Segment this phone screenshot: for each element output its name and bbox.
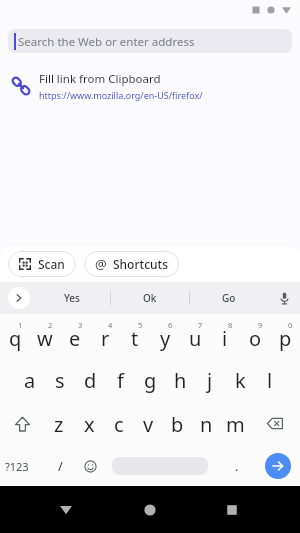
button[interactable]: s	[45, 358, 75, 402]
staticText: g	[144, 367, 157, 394]
button[interactable]: v	[134, 402, 163, 446]
staticText: l	[267, 367, 273, 394]
staticText: q	[9, 325, 22, 352]
staticText: ?123	[5, 459, 29, 474]
staticText: j	[207, 367, 213, 394]
button[interactable]: q	[0, 314, 30, 358]
staticText: e	[69, 325, 81, 352]
button[interactable]: y	[150, 314, 180, 358]
button[interactable]	[225, 503, 239, 517]
staticText: Ok	[143, 291, 157, 305]
staticText: Search the Web or enter address	[18, 34, 195, 50]
staticText: Scan	[38, 256, 65, 272]
staticText: c	[114, 411, 124, 438]
staticText: 3	[78, 320, 83, 330]
button[interactable]: m	[221, 402, 250, 446]
staticText: o	[249, 325, 262, 352]
staticText: k	[235, 367, 246, 394]
button[interactable]	[268, 282, 300, 314]
button[interactable]: Fill link from Clipboard	[13, 69, 300, 103]
button[interactable]: ?123	[5, 446, 45, 486]
staticText: https://www.mozilla.org/en-US/firefox/	[39, 89, 203, 101]
staticText: Shortcuts	[113, 256, 168, 272]
button[interactable]: x	[74, 402, 104, 446]
button[interactable]: i	[210, 314, 240, 358]
staticText: Go	[222, 291, 236, 305]
button[interactable]: Go	[190, 282, 268, 314]
staticText: Yes	[64, 291, 80, 305]
button[interactable]: o	[240, 314, 270, 358]
staticText: i	[222, 325, 228, 352]
staticText: z	[54, 411, 64, 438]
staticText: s	[55, 367, 65, 394]
staticText: .	[235, 457, 239, 475]
button[interactable]: f	[105, 358, 135, 402]
staticText: d	[84, 367, 97, 394]
staticText: 7	[198, 320, 203, 330]
button[interactable]: k	[225, 358, 255, 402]
button[interactable]: d	[75, 358, 105, 402]
button[interactable]: c	[104, 402, 134, 446]
button[interactable]: n	[192, 402, 221, 446]
button[interactable]: u	[180, 314, 210, 358]
staticText: y	[160, 325, 171, 352]
button[interactable]	[250, 402, 300, 446]
button[interactable]: @	[84, 251, 179, 277]
button[interactable]: Search the Web or enter address	[8, 29, 292, 53]
staticText: 1	[18, 320, 23, 330]
staticText: h	[174, 367, 187, 394]
button[interactable]: r	[90, 314, 120, 358]
button[interactable]: Yes	[33, 282, 110, 314]
staticText: b	[171, 411, 184, 438]
button[interactable]	[265, 453, 291, 479]
staticText: Fill link from Clipboard	[39, 71, 161, 87]
staticText: 2	[48, 320, 53, 330]
button[interactable]	[59, 503, 73, 517]
button[interactable]: l	[255, 358, 285, 402]
staticText: a	[24, 367, 36, 394]
button[interactable]	[0, 402, 44, 446]
button[interactable]	[75, 446, 105, 486]
button[interactable]: Ok	[111, 282, 189, 314]
staticText: w	[37, 325, 53, 352]
staticText: 5	[138, 320, 143, 330]
staticText: p	[279, 325, 292, 352]
staticText: r	[101, 325, 110, 352]
button[interactable]: e	[60, 314, 90, 358]
staticText: /	[58, 457, 63, 475]
button[interactable]: /	[45, 446, 75, 486]
staticText: 4	[108, 320, 113, 330]
button[interactable]: h	[165, 358, 195, 402]
staticText: t	[131, 325, 139, 352]
button[interactable]: .	[208, 446, 265, 486]
staticText: 8	[228, 320, 233, 330]
button[interactable]: z	[44, 402, 74, 446]
staticText: f	[117, 367, 124, 394]
button[interactable]	[143, 503, 157, 517]
staticText: m	[226, 411, 245, 438]
staticText: u	[189, 325, 202, 352]
staticText: v	[143, 411, 154, 438]
button[interactable]: g	[135, 358, 165, 402]
button[interactable]: b	[163, 402, 192, 446]
button[interactable]: p	[270, 314, 300, 358]
staticText: 6	[168, 320, 173, 330]
button[interactable]: j	[195, 358, 225, 402]
button[interactable]: Scan	[8, 251, 76, 277]
staticText: 9	[258, 320, 263, 330]
button[interactable]	[8, 287, 30, 309]
button[interactable]: t	[120, 314, 150, 358]
button[interactable]: w	[30, 314, 60, 358]
staticText: @	[95, 255, 107, 273]
staticText: x	[84, 411, 95, 438]
staticText: n	[200, 411, 213, 438]
button[interactable]	[112, 457, 208, 475]
button[interactable]: a	[15, 358, 45, 402]
staticText: 0	[288, 320, 293, 330]
